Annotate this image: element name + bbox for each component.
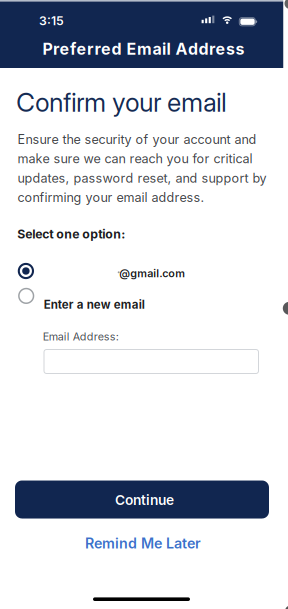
staticText: Email Address: — [43, 330, 119, 343]
button[interactable]: @gmail.com — [15, 260, 271, 282]
staticText: Confirm your email — [16, 87, 226, 118]
button[interactable]: Email Address — [44, 349, 258, 373]
staticText: Continue — [115, 492, 174, 508]
staticText: Enter a new email — [44, 297, 145, 311]
staticText: updates, password reset, and support by — [17, 170, 266, 186]
button[interactable]: Enter a new email — [15, 284, 271, 310]
button[interactable]: Continue — [15, 480, 269, 518]
staticText: 3:15 — [39, 13, 64, 28]
staticText: Preferred Email Address — [42, 39, 244, 59]
staticText: Ensure the security of your account and — [17, 132, 256, 147]
staticText: confirming your email address. — [17, 190, 204, 205]
staticText: Select one option: — [17, 227, 125, 241]
button[interactable]: Remind Me Later — [85, 535, 201, 552]
staticText: make sure we can reach you for critical — [17, 151, 252, 166]
staticText: Remind Me Later — [85, 535, 201, 552]
staticText: @gmail.com — [119, 267, 185, 280]
